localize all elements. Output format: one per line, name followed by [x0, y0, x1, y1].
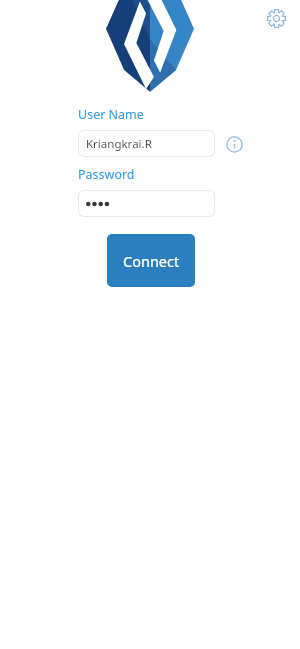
button[interactable]: Information	[222, 132, 246, 156]
button[interactable]	[79, 191, 214, 216]
button[interactable]: Settings	[261, 3, 291, 33]
staticText: Kriangkrai.R	[86, 136, 152, 152]
staticText: Password	[78, 166, 135, 183]
staticText: User Name	[78, 106, 144, 123]
staticText: Connect	[123, 251, 180, 271]
button[interactable]: Kriangkrai.R	[79, 131, 214, 156]
button[interactable]: Connect	[107, 234, 195, 287]
